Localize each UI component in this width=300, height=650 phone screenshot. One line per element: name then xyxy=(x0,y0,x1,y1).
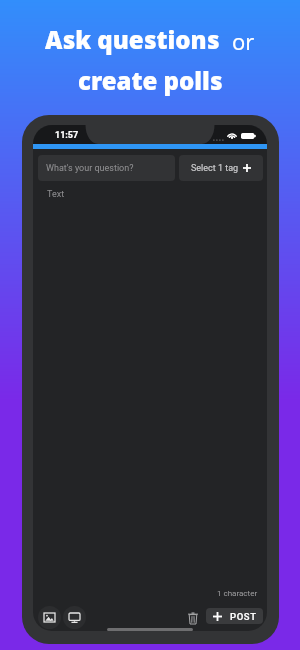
staticText: 1 character xyxy=(217,589,258,598)
staticText: Ask questions xyxy=(45,23,220,56)
button[interactable]: Select 1 tag xyxy=(179,155,263,181)
staticText: Select 1 tag xyxy=(191,163,239,174)
staticText: What's your question? xyxy=(46,163,134,174)
staticText: create polls xyxy=(78,64,223,97)
button[interactable]: Present xyxy=(63,606,86,629)
staticText: or xyxy=(232,26,255,56)
button[interactable]: POST xyxy=(206,608,263,624)
staticText: POST xyxy=(230,611,257,622)
staticText: 11:57 xyxy=(55,130,79,141)
button[interactable]: Add image xyxy=(38,606,61,629)
button[interactable]: Delete xyxy=(183,608,203,628)
staticText: Text xyxy=(47,189,65,200)
button[interactable]: What's your question? xyxy=(38,155,175,181)
